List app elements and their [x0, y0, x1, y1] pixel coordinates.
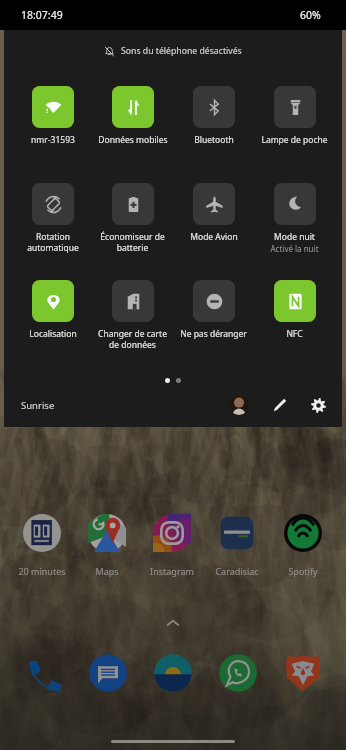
button[interactable]: Économiseur de batterie [92, 183, 173, 253]
button[interactable]: Ne pas déranger [173, 280, 254, 340]
button[interactable]: 20 minutes [10, 514, 74, 577]
staticText: Rotation automatique [27, 231, 79, 253]
button[interactable]: messages [85, 650, 131, 696]
staticText: 60% [300, 8, 321, 22]
button[interactable]: Données mobiles [92, 86, 173, 146]
staticText: NFC [286, 328, 303, 340]
staticText: Maps [95, 565, 119, 577]
button[interactable]: phone [20, 650, 66, 696]
staticText: Spotify [288, 565, 318, 577]
button[interactable]: nmr-31593 [12, 86, 93, 146]
button[interactable]: whatsapp [215, 650, 261, 696]
button[interactable]: Caradisiac [205, 514, 269, 577]
staticText: 20 minutes [18, 565, 66, 577]
staticText: Données mobiles [98, 134, 168, 146]
button[interactable]: All apps [163, 613, 183, 633]
button[interactable]: Localisation [12, 280, 93, 340]
button[interactable]: Mode Avion [173, 183, 254, 243]
button[interactable]: weather [150, 650, 196, 696]
button[interactable]: NFC [254, 280, 335, 340]
staticText: Bluetooth [194, 134, 234, 146]
button[interactable]: Mode nuit [254, 183, 335, 254]
staticText: Ne pas déranger [180, 328, 247, 340]
staticText: Activé la nuit [270, 243, 319, 254]
button[interactable]: User profile [229, 395, 249, 415]
button[interactable]: Bluetooth [173, 86, 254, 146]
staticText: 18:07:49 [21, 8, 63, 22]
button[interactable]: Changer de carte de données [92, 280, 173, 350]
staticText: Sunrise [21, 399, 55, 412]
button[interactable]: Lampe de poche [254, 86, 335, 146]
staticText: Lampe de poche [261, 134, 328, 146]
button[interactable]: Edit [269, 394, 291, 416]
staticText: Mode nuit [274, 231, 315, 243]
staticText: Mode Avion [190, 231, 238, 243]
staticText: nmr-31593 [31, 134, 75, 146]
button[interactable]: Instagram [140, 514, 204, 577]
button[interactable]: Maps [75, 514, 139, 577]
button[interactable]: Spotify [271, 514, 335, 577]
staticText: Changer de carte de données [98, 328, 167, 350]
staticText: Instagram [150, 565, 194, 577]
button[interactable]: Settings [307, 394, 329, 416]
staticText: Sons du téléphone désactivés [121, 45, 242, 57]
staticText: Localisation [29, 328, 77, 340]
button[interactable]: brave [280, 650, 326, 696]
staticText: Économiseur de batterie [100, 231, 165, 253]
button[interactable]: Rotation automatique [12, 183, 93, 253]
staticText: Caradisiac [215, 565, 259, 577]
